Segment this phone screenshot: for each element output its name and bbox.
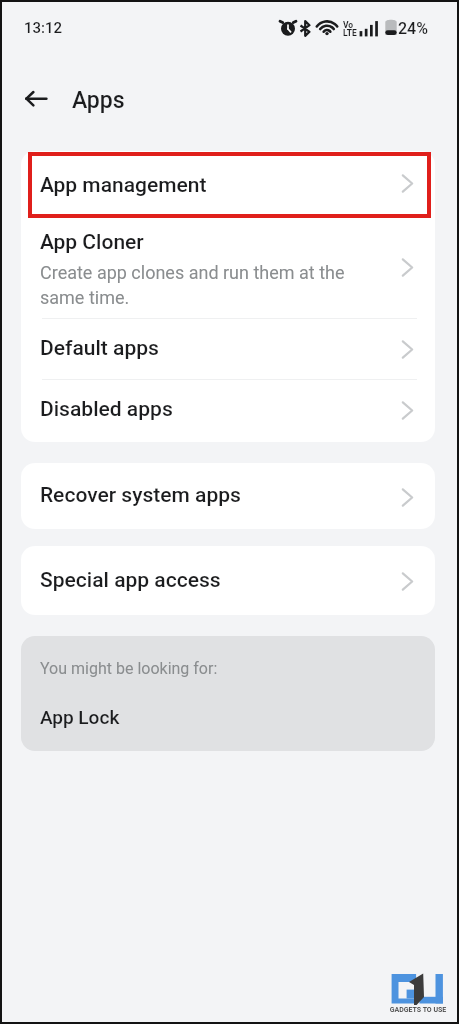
button[interactable]: App management (21, 151, 435, 217)
button[interactable]: Recover system apps (21, 463, 435, 529)
staticText: 13:12 (24, 19, 63, 37)
staticText: Vo (343, 20, 354, 30)
staticText: App Lock (40, 706, 120, 728)
staticText: Recover system apps (40, 483, 241, 508)
button[interactable]: Special app access (21, 546, 435, 615)
staticText: App management (40, 173, 207, 198)
staticText: You might be looking for: (40, 659, 218, 678)
staticText: LTE (343, 28, 357, 38)
button[interactable]: App Cloner (21, 218, 435, 318)
staticText: GADGETS TO USE (388, 1006, 448, 1014)
staticText: Special app access (40, 568, 221, 593)
button[interactable]: Back (20, 84, 50, 114)
button[interactable]: You might be looking for: (21, 636, 435, 751)
staticText: 24% (398, 19, 428, 38)
button[interactable]: Default apps (21, 319, 435, 379)
staticText: App Cloner (40, 230, 144, 255)
staticText: Create app clones and run them at the sa… (40, 262, 345, 308)
staticText: Disabled apps (40, 397, 173, 422)
button[interactable]: Disabled apps (21, 380, 435, 441)
staticText: Apps (72, 87, 125, 114)
staticText: Default apps (40, 336, 159, 361)
